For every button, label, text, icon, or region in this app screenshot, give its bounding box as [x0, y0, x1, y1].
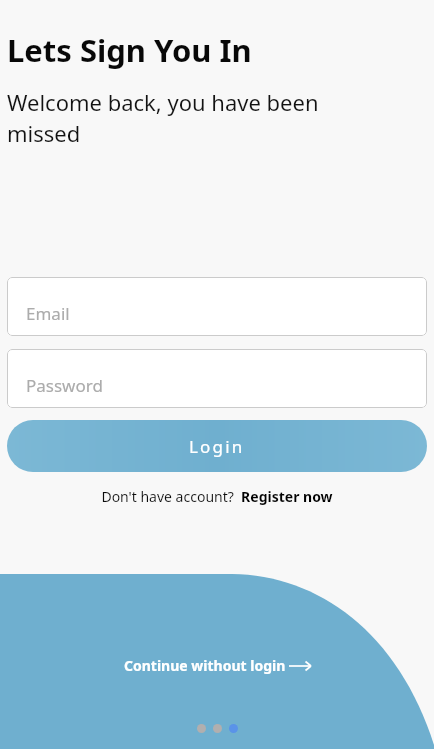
- staticText: Login: [189, 435, 245, 458]
- other: Continue without login: [289, 660, 311, 672]
- staticText: Continue without login: [124, 656, 286, 675]
- staticText: Welcome back, you have been missed: [7, 87, 384, 149]
- button[interactable]: Don't have account? Register now: [95, 485, 339, 508]
- staticText: Don't have account? Register now: [101, 487, 333, 506]
- button[interactable]: Email: [7, 277, 427, 336]
- button[interactable]: Password: [7, 349, 427, 408]
- staticText: Lets Sign You In: [7, 29, 252, 71]
- staticText: Email: [26, 302, 70, 325]
- button[interactable]: Continue without login: [114, 652, 321, 679]
- button[interactable]: Login: [7, 420, 427, 472]
- staticText: Password: [26, 374, 103, 397]
